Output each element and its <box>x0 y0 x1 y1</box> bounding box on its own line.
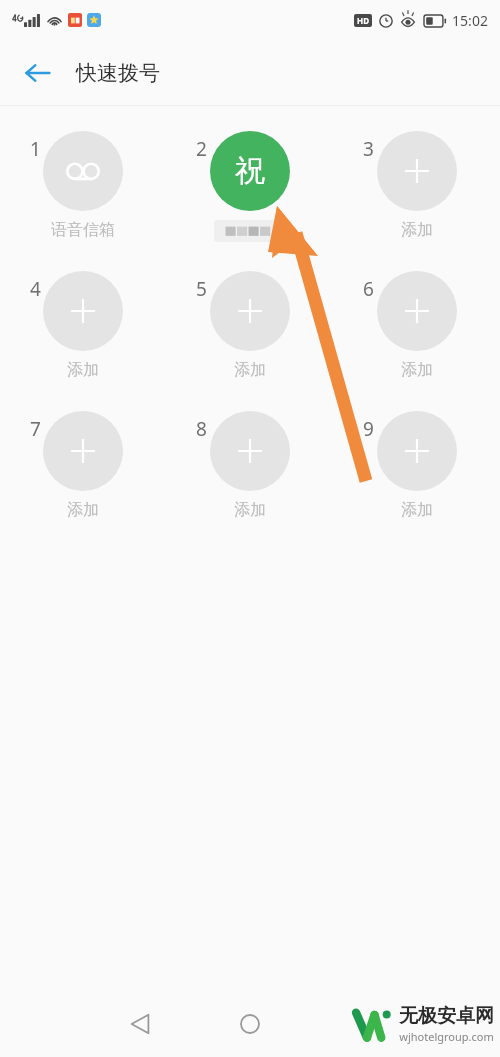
staticText: 5 <box>196 276 207 302</box>
button[interactable]: 3 <box>333 118 500 258</box>
staticText: 无极安卓网 <box>399 1004 494 1028</box>
staticText: 添加 <box>401 500 433 520</box>
staticText: 2 <box>196 136 207 162</box>
staticText: 添加 <box>401 360 433 380</box>
staticText: 4 <box>30 276 41 302</box>
button[interactable]: 5 <box>166 258 333 398</box>
staticText: 8 <box>196 416 207 442</box>
button[interactable]: Home <box>220 994 280 1054</box>
staticText: 添加 <box>234 360 266 380</box>
staticText: 1 <box>30 136 41 162</box>
staticText: 添加 <box>401 220 433 240</box>
staticText: 7 <box>30 416 41 442</box>
staticText: 添加 <box>67 500 99 520</box>
button[interactable]: Back <box>10 45 66 101</box>
staticText: 添加 <box>234 500 266 520</box>
staticText: 祝 <box>235 152 265 190</box>
staticText: 6 <box>363 276 374 302</box>
button[interactable]: Back <box>110 994 170 1054</box>
staticText: 快速拨号 <box>76 60 160 86</box>
staticText: 9 <box>363 416 374 442</box>
staticText: 15:02 <box>452 11 488 30</box>
staticText: HD <box>357 15 369 26</box>
button[interactable]: 2 <box>166 118 333 258</box>
staticText: 语音信箱 <box>51 220 115 240</box>
staticText: wjhotelgroup.com <box>399 1029 494 1044</box>
button[interactable]: 4 <box>0 258 166 398</box>
button[interactable]: 1 <box>0 118 166 258</box>
button[interactable]: 7 <box>0 398 166 538</box>
staticText: 添加 <box>67 360 99 380</box>
button[interactable]: 6 <box>333 258 500 398</box>
button[interactable]: 8 <box>166 398 333 538</box>
staticText: 3 <box>363 136 374 162</box>
button[interactable]: 9 <box>333 398 500 538</box>
